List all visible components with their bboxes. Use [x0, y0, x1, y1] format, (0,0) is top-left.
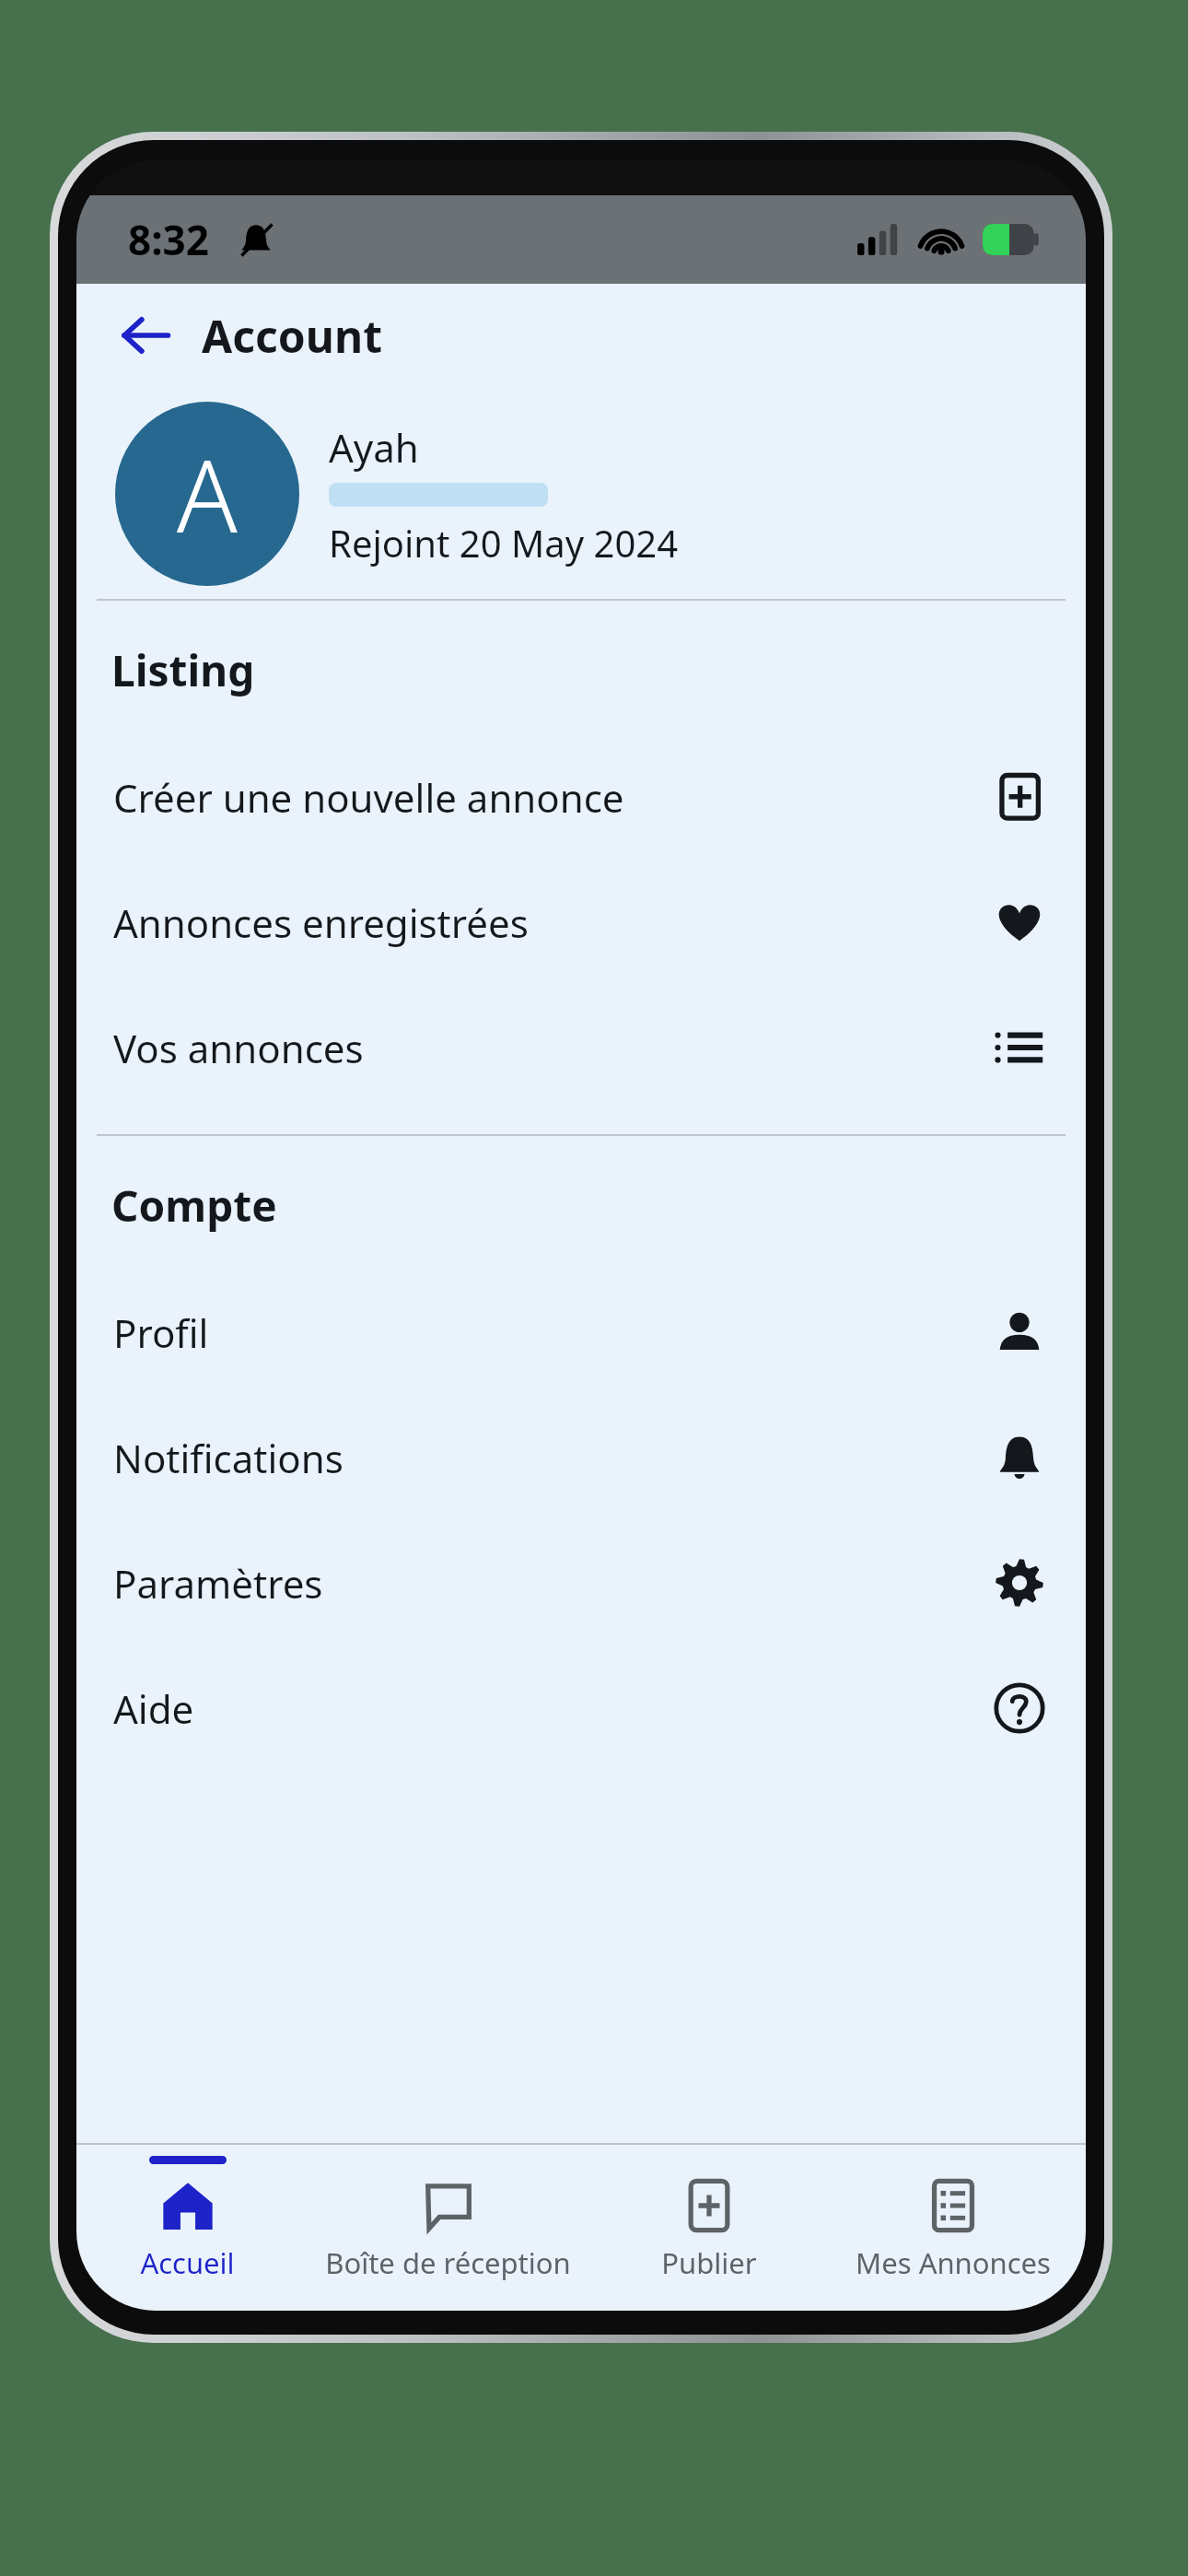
- staticText: Accueil: [140, 2243, 235, 2282]
- button[interactable]: Créer une nouvelle annonce: [76, 734, 1086, 860]
- staticText: Publier: [661, 2243, 757, 2282]
- staticText: 8:32: [128, 212, 209, 267]
- button[interactable]: Notifications: [76, 1395, 1086, 1520]
- staticText: Annonces enregistrées: [113, 896, 529, 949]
- staticText: Profil: [113, 1306, 209, 1359]
- staticText: Mes Annonces: [856, 2243, 1051, 2282]
- button[interactable]: Mes Annonces: [820, 2145, 1086, 2311]
- button[interactable]: Profil: [76, 1270, 1086, 1395]
- button[interactable]: Back: [115, 305, 176, 366]
- staticText: Paramètres: [113, 1557, 323, 1610]
- button[interactable]: Annonces enregistrées: [76, 860, 1086, 985]
- button[interactable]: Publier: [598, 2145, 820, 2311]
- button[interactable]: Paramètres: [76, 1520, 1086, 1645]
- button[interactable]: Accueil: [76, 2145, 298, 2311]
- staticText: Vos annonces: [113, 1022, 364, 1074]
- button[interactable]: Boîte de réception: [298, 2145, 598, 2311]
- staticText: Compte: [111, 1177, 277, 1235]
- button[interactable]: Vos annonces: [76, 985, 1086, 1110]
- staticText: Boîte de réception: [325, 2243, 571, 2282]
- staticText: Account: [202, 306, 382, 366]
- staticText: Aide: [113, 1682, 194, 1735]
- staticText: Créer une nouvelle annonce: [113, 771, 624, 824]
- staticText: Ayah: [329, 421, 419, 474]
- button[interactable]: Aide: [76, 1645, 1086, 1771]
- staticText: Rejoint 20 May 2024: [329, 518, 679, 568]
- staticText: A: [177, 427, 238, 562]
- staticText: Listing: [111, 641, 255, 699]
- staticText: Notifications: [113, 1432, 344, 1484]
